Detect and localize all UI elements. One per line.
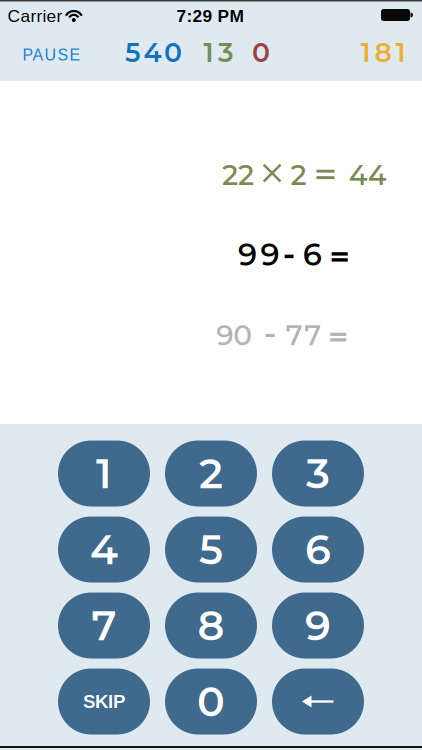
- staticText: 1: [96, 448, 112, 499]
- button[interactable]: 8: [165, 592, 257, 658]
- staticText: 99: [238, 236, 279, 273]
- staticText: SKIP: [83, 691, 125, 712]
- staticText: 77: [286, 318, 321, 352]
- button[interactable]: 2: [165, 440, 257, 506]
- button[interactable]: 0: [165, 668, 257, 734]
- button[interactable]: SKIP: [58, 668, 150, 734]
- staticText: PAUSE: [22, 46, 80, 64]
- button[interactable]: 1: [58, 440, 150, 506]
- staticText: 0: [197, 676, 225, 727]
- staticText: 7: [91, 600, 116, 651]
- staticText: 540: [125, 36, 182, 69]
- staticText: 90: [216, 318, 252, 352]
- staticText: 7:29 PM: [176, 6, 243, 26]
- staticText: 6: [303, 236, 322, 273]
- button[interactable]: 4: [58, 516, 150, 582]
- staticText: 9: [305, 600, 331, 651]
- staticText: 3: [306, 448, 330, 499]
- button[interactable]: PAUSE: [16, 38, 86, 72]
- staticText: 181: [360, 36, 405, 69]
- staticText: 6: [305, 524, 331, 575]
- staticText: 8: [197, 600, 224, 651]
- button[interactable]: 6: [272, 516, 364, 582]
- button[interactable]: 5: [165, 516, 257, 582]
- staticText: 4: [90, 524, 118, 575]
- staticText: 22: [222, 158, 254, 192]
- staticText: 44: [349, 158, 387, 192]
- button[interactable]: 9: [272, 592, 364, 658]
- button[interactable]: Delete: [272, 668, 364, 734]
- staticText: 0: [252, 36, 270, 69]
- staticText: Carrier: [7, 6, 62, 26]
- button[interactable]: 3: [272, 440, 364, 506]
- staticText: 5: [199, 524, 223, 575]
- staticText: 2: [199, 448, 223, 499]
- staticText: 2: [291, 158, 307, 192]
- button[interactable]: 7: [58, 592, 150, 658]
- staticText: 13: [203, 36, 234, 69]
